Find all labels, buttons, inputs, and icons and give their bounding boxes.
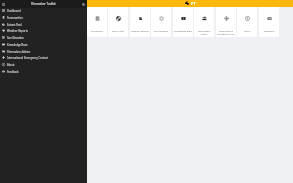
staticText: Weather Reports: [7, 29, 28, 33]
staticText: Feedback: [7, 70, 19, 74]
staticText: Dashboard: [7, 9, 21, 13]
button[interactable]: Weather Reports: [0, 27, 87, 34]
staticText: Knowledge Base: [7, 43, 28, 47]
staticText: Weather Reports: [130, 30, 150, 33]
button[interactable]: Sun Elevation: [151, 7, 171, 37]
button[interactable]: Feedback: [0, 68, 87, 75]
button[interactable]: Menu: [0, 1, 7, 8]
button[interactable]: Filmmakers Advice: [0, 48, 87, 55]
staticText: Focus Chart: [108, 30, 128, 33]
staticText: International Emergency Cont: [216, 30, 236, 36]
button[interactable]: Filmmakers Advice: [194, 7, 214, 37]
staticText: Documents: [87, 30, 107, 33]
button[interactable]: Documents: [87, 7, 107, 37]
staticText: Feedback: [259, 30, 279, 33]
button[interactable]: International Emergency Contact: [0, 54, 87, 61]
button[interactable]: Focus Chart: [108, 7, 128, 37]
button[interactable]: Dashboard: [0, 7, 87, 14]
staticText: Sun Elevation: [7, 36, 24, 40]
button[interactable]: About: [0, 61, 87, 68]
staticText: Knowledge Base: [173, 30, 193, 33]
button[interactable]: Extract Reel: [0, 21, 87, 28]
staticText: Extract Reel: [7, 23, 22, 27]
staticText: International Emergency Contact: [7, 56, 48, 60]
button[interactable]: Sun Elevation: [0, 34, 87, 41]
button[interactable]: Knowledge Base: [173, 7, 193, 37]
button[interactable]: Feedback: [259, 7, 279, 37]
staticText: Filmmakers Advice: [194, 30, 214, 36]
button[interactable]: International Emergency Cont: [216, 7, 236, 37]
button[interactable]: Weather Reports: [130, 7, 150, 37]
button[interactable]: About: [237, 7, 257, 37]
button[interactable]: Account: [80, 1, 87, 8]
staticText: Sun Elevation: [151, 30, 171, 33]
staticText: Filmmakers Advice: [7, 50, 31, 54]
staticText: About: [7, 63, 15, 67]
staticText: Screenwriter: [7, 16, 23, 20]
staticText: Filmmaker Toolkit: [31, 2, 56, 6]
button[interactable]: Screenwriter: [0, 14, 87, 21]
staticText: About: [237, 30, 257, 33]
staticText: FT: [191, 1, 196, 6]
button[interactable]: Knowledge Base: [0, 41, 87, 48]
